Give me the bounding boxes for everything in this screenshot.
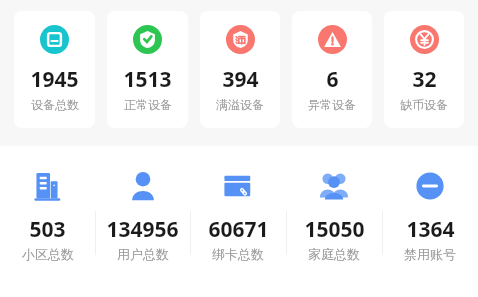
staticText: 32: [412, 65, 437, 94]
staticText: 15050: [304, 215, 365, 244]
staticText: 小区总数: [22, 246, 74, 262]
staticText: 正常设备: [124, 97, 172, 112]
button[interactable]: 缺币设备: [384, 11, 464, 128]
staticText: 满溢设备: [216, 97, 264, 112]
staticText: 503: [29, 215, 66, 244]
button[interactable]: 用户总数: [95, 146, 190, 297]
staticText: 禁用账号: [404, 246, 456, 262]
button[interactable]: 小区总数: [0, 146, 95, 297]
button[interactable]: 绑卡总数: [190, 146, 286, 297]
staticText: 家庭总数: [308, 246, 360, 262]
staticText: 60671: [208, 215, 269, 244]
staticText: 1945: [30, 65, 79, 94]
button[interactable]: 满溢设备: [200, 11, 280, 128]
staticText: 用户总数: [117, 246, 169, 262]
button[interactable]: 家庭总数: [286, 146, 382, 297]
button[interactable]: 设备总数: [14, 11, 95, 128]
staticText: 设备总数: [31, 97, 79, 112]
staticText: 134956: [106, 215, 179, 244]
button[interactable]: 异常设备: [292, 11, 372, 128]
button[interactable]: 正常设备: [107, 11, 188, 128]
staticText: 394: [222, 65, 259, 94]
staticText: 绑卡总数: [212, 246, 264, 262]
button[interactable]: 禁用账号: [382, 146, 478, 297]
staticText: 异常设备: [308, 97, 356, 112]
staticText: 缺币设备: [400, 97, 448, 112]
staticText: 1513: [123, 65, 172, 94]
staticText: 6: [326, 65, 339, 94]
staticText: 1364: [406, 215, 455, 244]
